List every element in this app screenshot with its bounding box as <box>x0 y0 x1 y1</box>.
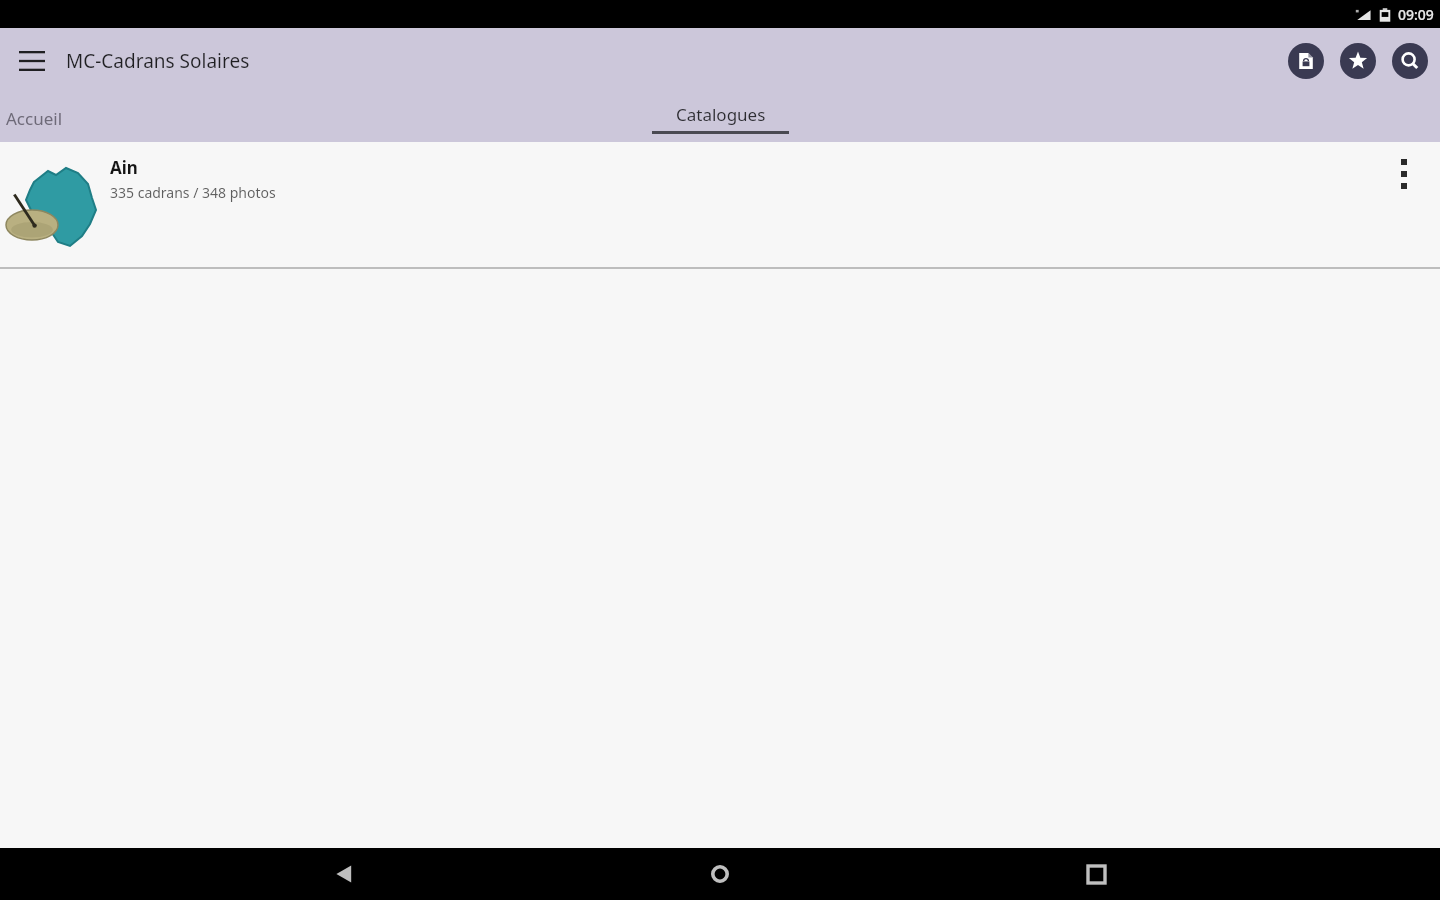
staticText: Catalogues <box>676 103 766 126</box>
button[interactable]: Open navigation drawer <box>10 39 54 83</box>
button[interactable]: Documents <box>1288 43 1324 79</box>
button[interactable]: Search <box>1392 43 1428 79</box>
button[interactable]: Catalogues <box>652 94 789 142</box>
staticText: Ain <box>110 156 138 179</box>
staticText: 09:09 <box>1398 5 1434 24</box>
button[interactable]: Accueil <box>0 94 140 142</box>
button[interactable]: Home <box>688 848 752 900</box>
button[interactable]: Ain <box>0 142 1440 267</box>
button[interactable]: Back <box>312 848 376 900</box>
staticText: 335 cadrans / 348 photos <box>110 183 276 202</box>
button[interactable]: Recent apps <box>1064 848 1128 900</box>
button[interactable]: More options <box>1378 148 1430 200</box>
button[interactable]: Favorites <box>1340 43 1376 79</box>
staticText: MC-Cadrans Solaires <box>66 48 250 74</box>
staticText: Accueil <box>6 107 63 130</box>
